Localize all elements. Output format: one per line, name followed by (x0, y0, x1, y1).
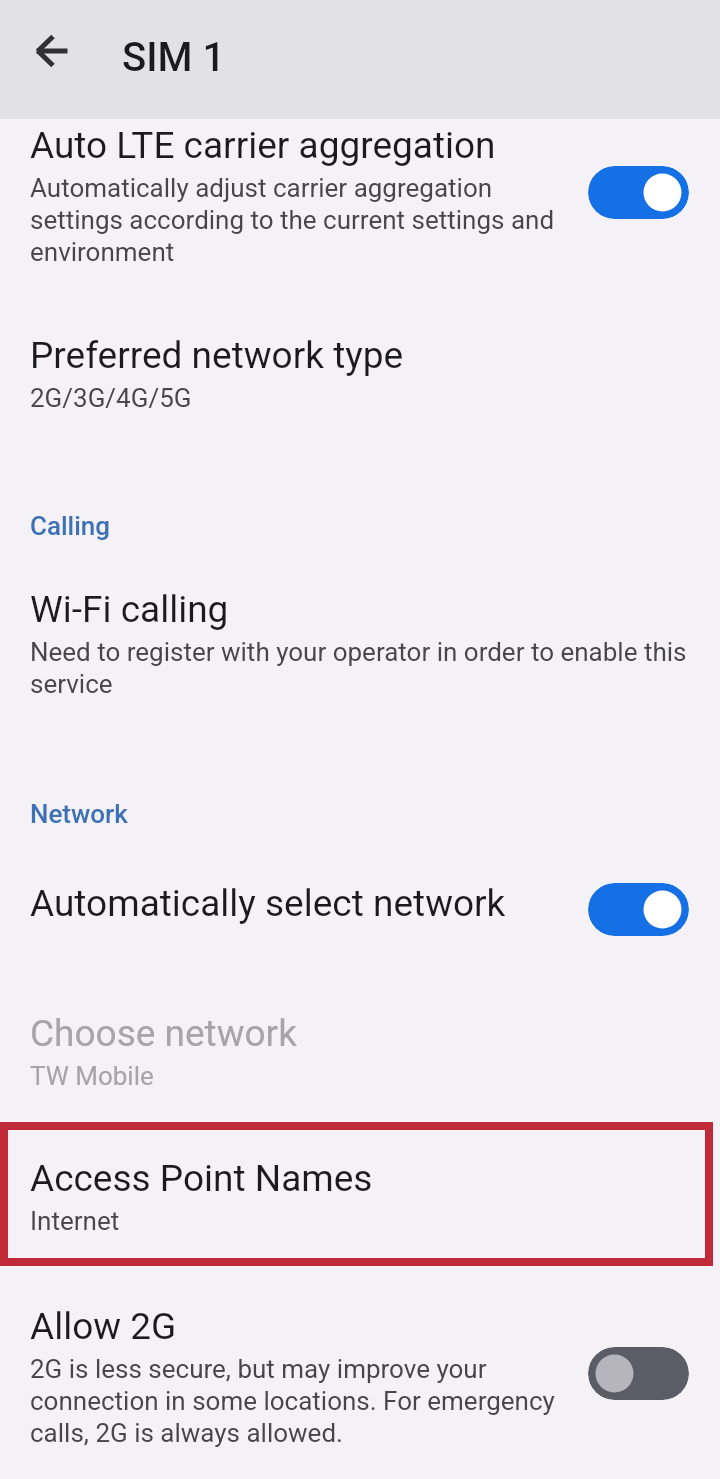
staticText: Preferred network type (30, 333, 404, 377)
button[interactable]: Back (20, 19, 84, 83)
staticText: Network (30, 799, 128, 829)
button[interactable]: Toggle on (588, 883, 689, 936)
staticText: Choose network (30, 1011, 297, 1055)
staticText: Automatically adjust carrier aggregation… (30, 172, 565, 268)
staticText: Internet (30, 1205, 120, 1237)
button[interactable]: Auto LTE carrier aggregation (0, 115, 720, 305)
staticText: 2G is less secure, but may improve your … (30, 1353, 565, 1449)
button[interactable]: Wi-Fi calling (0, 579, 720, 719)
button[interactable]: Toggle on (588, 166, 689, 219)
staticText: Automatically select network (30, 881, 506, 925)
staticText: Need to register with your operator in o… (30, 636, 690, 700)
staticText: Allow 2G (30, 1304, 177, 1348)
staticText: Auto LTE carrier aggregation (30, 123, 496, 167)
staticText: Calling (30, 511, 111, 541)
staticText: SIM 1 (122, 34, 226, 81)
staticText: TW Mobile (30, 1060, 154, 1092)
button[interactable]: Automatically select network (0, 871, 720, 971)
staticText: Wi-Fi calling (30, 587, 229, 631)
button[interactable]: Choose network (0, 1003, 720, 1113)
staticText: Access Point Names (30, 1156, 373, 1200)
button[interactable]: Access Point Names (0, 1122, 713, 1266)
staticText: 2G/3G/4G/5G (30, 382, 192, 414)
button[interactable]: Allow 2G (0, 1296, 720, 1476)
button[interactable]: Preferred network type (0, 325, 720, 435)
button[interactable]: Toggle off (588, 1347, 689, 1400)
